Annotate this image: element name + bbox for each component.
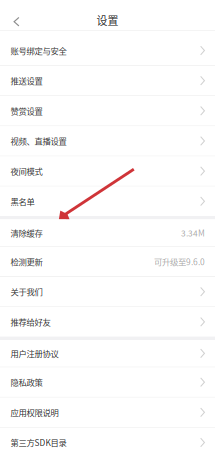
button[interactable]: 清除缓存	[0, 219, 215, 246]
staticText: 用户注册协议	[11, 347, 59, 359]
button[interactable]: 隐私政策	[0, 367, 215, 397]
button[interactable]: 检测更新	[0, 247, 215, 276]
staticText: 推荐给好友	[11, 316, 51, 328]
button[interactable]: 推荐给好友	[0, 307, 215, 336]
staticText: 关于我们	[11, 286, 43, 298]
button[interactable]: 账号绑定与安全	[0, 36, 215, 65]
button[interactable]: 黑名单	[0, 187, 215, 216]
staticText: 检测更新	[11, 255, 43, 268]
button[interactable]: 视频、直播设置	[0, 126, 215, 156]
button[interactable]: 推送设置	[0, 66, 215, 95]
button[interactable]: 关于我们	[0, 277, 215, 306]
button[interactable]: 夜间模式	[0, 156, 215, 186]
button[interactable]: Back	[0, 9, 33, 31]
staticText: 赞赏设置	[11, 105, 43, 117]
staticText: 可升级至9.6.0	[154, 255, 205, 268]
staticText: 隐私政策	[11, 376, 43, 388]
staticText: 黑名单	[11, 195, 35, 207]
button[interactable]: 应用权限说明	[0, 398, 215, 427]
staticText: 3.34M	[181, 227, 205, 239]
staticText: 设置	[96, 12, 118, 28]
staticText: 应用权限说明	[11, 406, 59, 418]
staticText: 夜间模式	[11, 165, 43, 177]
staticText: 第三方SDK目录	[11, 436, 67, 448]
button[interactable]: 第三方SDK目录	[0, 428, 215, 450]
staticText: 账号绑定与安全	[11, 44, 67, 57]
staticText: 清除缓存	[11, 227, 43, 239]
staticText: 推送设置	[11, 75, 43, 87]
button[interactable]: 用户注册协议	[0, 340, 215, 367]
staticText: 视频、直播设置	[11, 135, 67, 147]
button[interactable]: 赞赏设置	[0, 96, 215, 125]
